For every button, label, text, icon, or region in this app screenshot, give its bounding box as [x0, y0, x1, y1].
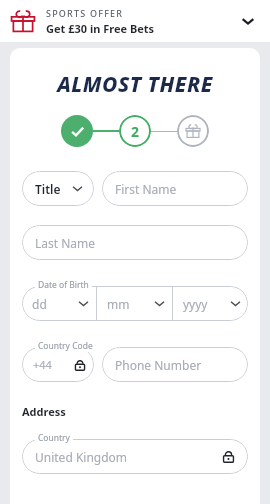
staticText: Title	[35, 181, 61, 197]
button[interactable]: mm	[97, 286, 172, 321]
button[interactable]: Phone Number	[102, 347, 248, 382]
button[interactable]: dd	[22, 286, 96, 321]
staticText: Last Name	[35, 235, 96, 251]
staticText: Address	[22, 404, 66, 419]
staticText: First Name	[115, 181, 177, 197]
staticText: Phone Number	[115, 357, 202, 373]
button[interactable]: SPORTS OFFER	[0, 0, 270, 42]
staticText: +44	[33, 357, 52, 372]
button[interactable]: Step 3 reward	[177, 115, 209, 147]
staticText: United Kingdom	[35, 449, 128, 465]
staticText: 2	[131, 122, 140, 141]
staticText: dd	[32, 296, 47, 312]
button[interactable]: Step 1 complete	[61, 115, 93, 147]
button[interactable]: dd	[22, 286, 248, 321]
button[interactable]: yyyy	[173, 286, 248, 321]
button[interactable]: United Kingdom	[22, 439, 248, 474]
button[interactable]: Expand offer	[234, 7, 262, 35]
staticText: yyyy	[183, 296, 208, 312]
staticText: ALMOST THERE	[10, 70, 260, 99]
staticText: mm	[107, 296, 130, 312]
staticText: Country Code	[38, 340, 93, 352]
staticText: SPORTS OFFER	[46, 7, 124, 19]
button[interactable]: First Name	[102, 171, 248, 206]
button[interactable]: Title	[22, 171, 94, 206]
staticText: Date of Birth	[38, 279, 89, 291]
staticText: Country	[38, 432, 70, 444]
button[interactable]: Last Name	[22, 225, 248, 260]
button[interactable]: 2	[119, 115, 151, 147]
button[interactable]: +44	[22, 347, 94, 382]
staticText: Get £30 in Free Bets	[46, 21, 155, 36]
